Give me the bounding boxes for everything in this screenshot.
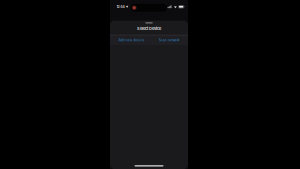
staticText: Scan network	[159, 38, 180, 42]
staticText: 12:54	[116, 5, 124, 9]
button[interactable]: Add new device	[118, 36, 144, 44]
staticText: Select Device	[137, 26, 161, 31]
staticText: Add new device	[118, 38, 144, 42]
button[interactable]: Scan network	[159, 36, 180, 44]
